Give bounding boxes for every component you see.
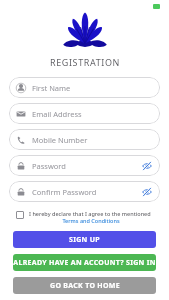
staticText: First Name [32, 83, 71, 93]
button[interactable]: ALREADY HAVE AN ACCOUNT? SIGN IN [13, 254, 156, 271]
staticText: GO BACK TO HOME [50, 281, 120, 291]
button[interactable]: Password [9, 155, 160, 176]
button[interactable]: GO BACK TO HOME [13, 277, 156, 294]
button[interactable]: Terms and Conditions [29, 217, 153, 224]
staticText: SIGN UP [69, 235, 100, 245]
staticText: Password [32, 161, 66, 171]
button[interactable]: I hereby declare that I agree to the men… [16, 210, 153, 224]
button[interactable]: Mobile Number [9, 129, 160, 150]
staticText: Email Address [32, 109, 82, 119]
staticText: ALREADY HAVE AN ACCOUNT? SIGN IN [13, 258, 156, 268]
button[interactable]: Toggle password visibility [141, 160, 153, 172]
button[interactable]: Toggle password visibility [141, 186, 153, 198]
button[interactable]: Confirm Password [9, 181, 160, 202]
staticText: Confirm Password [32, 187, 97, 197]
button[interactable]: SIGN UP [13, 231, 156, 248]
staticText: I hereby declare that I agree to the men… [29, 210, 151, 217]
staticText: Mobile Number [32, 135, 88, 145]
button[interactable]: First Name [9, 77, 160, 98]
button[interactable]: Email Address [9, 103, 160, 124]
staticText: REGISTRATION [50, 56, 120, 68]
